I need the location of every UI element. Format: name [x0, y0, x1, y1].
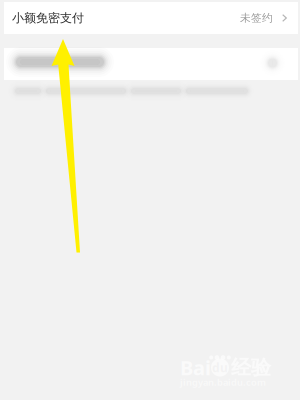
staticText: 经验 — [231, 355, 271, 380]
staticText: 未签约 — [240, 11, 273, 24]
staticText: du — [212, 359, 228, 375]
staticText: 小额免密支付 — [12, 11, 84, 25]
staticText: Bai — [180, 354, 211, 381]
button[interactable]: 小额免密支付 — [4, 2, 298, 34]
